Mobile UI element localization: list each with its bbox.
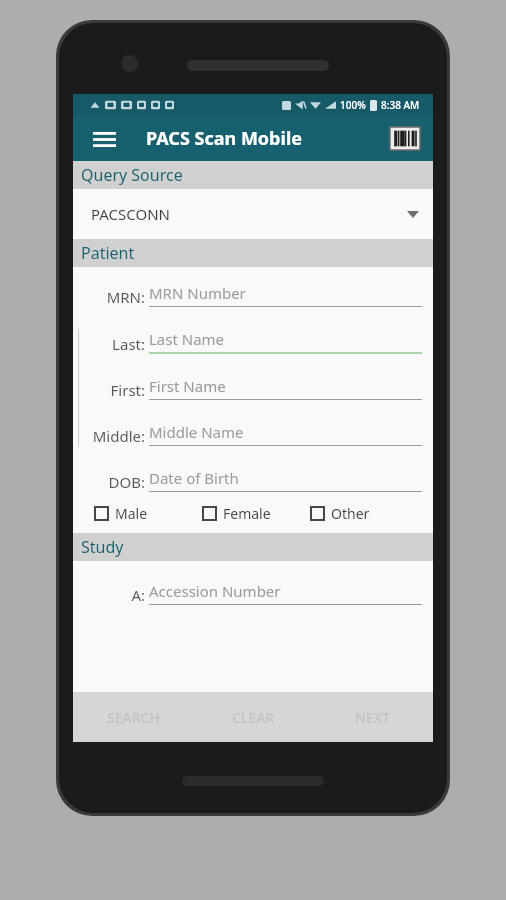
button[interactable]: A:	[73, 581, 433, 605]
button[interactable]: Last:	[73, 329, 433, 354]
staticText: Patient	[81, 242, 135, 264]
button[interactable]: MRN:	[73, 283, 433, 307]
staticText: First Name	[149, 376, 226, 396]
staticText: Last Name	[149, 329, 225, 349]
button[interactable]: First:	[73, 376, 433, 400]
staticText: SEARCH	[107, 708, 160, 727]
staticText: DOB:	[108, 472, 145, 492]
button[interactable]: Female	[203, 504, 311, 523]
staticText: Middle Name	[149, 422, 244, 442]
staticText: NEXT	[355, 708, 391, 727]
button[interactable]: Other	[311, 504, 419, 523]
staticText: Query Source	[81, 164, 183, 186]
staticText: Other	[331, 504, 370, 523]
staticText: Last:	[112, 334, 145, 354]
staticText: PACSCONN	[91, 204, 171, 224]
staticText: Middle:	[92, 426, 145, 446]
staticText: Accession Number	[149, 581, 281, 601]
staticText: First:	[110, 380, 145, 400]
staticText: Male	[115, 504, 148, 523]
button[interactable]: Middle:	[73, 422, 433, 446]
button[interactable]: Male	[95, 504, 203, 523]
button[interactable]: PACSCONN	[73, 189, 433, 239]
staticText: 8:38 AM	[381, 98, 420, 112]
staticText: CLEAR	[232, 708, 275, 727]
staticText: Study	[81, 536, 124, 558]
button[interactable]: Open navigation menu	[85, 120, 123, 158]
staticText: PACS Scan Mobile	[146, 126, 302, 151]
button[interactable]: DOB:	[73, 468, 433, 492]
staticText: Female	[223, 504, 271, 523]
staticText: MRN Number	[149, 283, 246, 303]
button[interactable]: SEARCH	[73, 692, 193, 742]
button[interactable]: Scan barcode	[390, 127, 420, 150]
staticText: 100%	[340, 98, 366, 112]
staticText: Date of Birth	[149, 468, 239, 488]
staticText: A:	[131, 585, 145, 605]
staticText: MRN:	[106, 287, 145, 307]
